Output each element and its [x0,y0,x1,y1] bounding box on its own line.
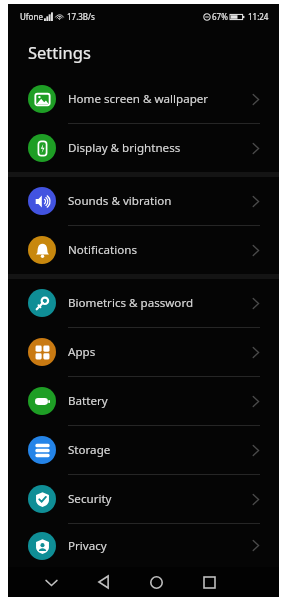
staticText: Ufone [20,11,43,22]
staticText: Biometrics & password [68,295,194,311]
button[interactable]: Security [8,475,279,523]
button[interactable]: Battery [8,377,279,425]
button[interactable]: Home screen & wallpaper [8,75,279,123]
staticText: Storage [68,442,111,458]
button[interactable]: Home [143,569,169,595]
button[interactable]: Display & brightness [8,124,279,172]
button[interactable]: Hide keyboard [38,569,64,595]
button[interactable]: Storage [8,426,279,474]
staticText: Home screen & wallpaper [68,91,209,107]
staticText: 17.3B/s [67,11,95,22]
button[interactable]: Back [90,569,116,595]
staticText: 11:24 [248,11,269,22]
staticText: Notifications [68,242,137,258]
button[interactable]: Sounds & vibration [8,177,279,225]
button[interactable]: Privacy [8,524,279,567]
staticText: Sounds & vibration [68,193,172,209]
staticText: Apps [68,344,96,360]
staticText: Display & brightness [68,140,181,156]
staticText: Battery [68,393,108,409]
staticText: Security [68,491,112,507]
staticText: Privacy [68,538,107,554]
button[interactable]: Apps [8,328,279,376]
button[interactable]: Recent apps [196,569,222,595]
button[interactable]: Notifications [8,226,279,274]
button[interactable]: Biometrics & password [8,279,279,327]
staticText: 67% [212,11,228,22]
staticText: Settings [28,41,91,63]
